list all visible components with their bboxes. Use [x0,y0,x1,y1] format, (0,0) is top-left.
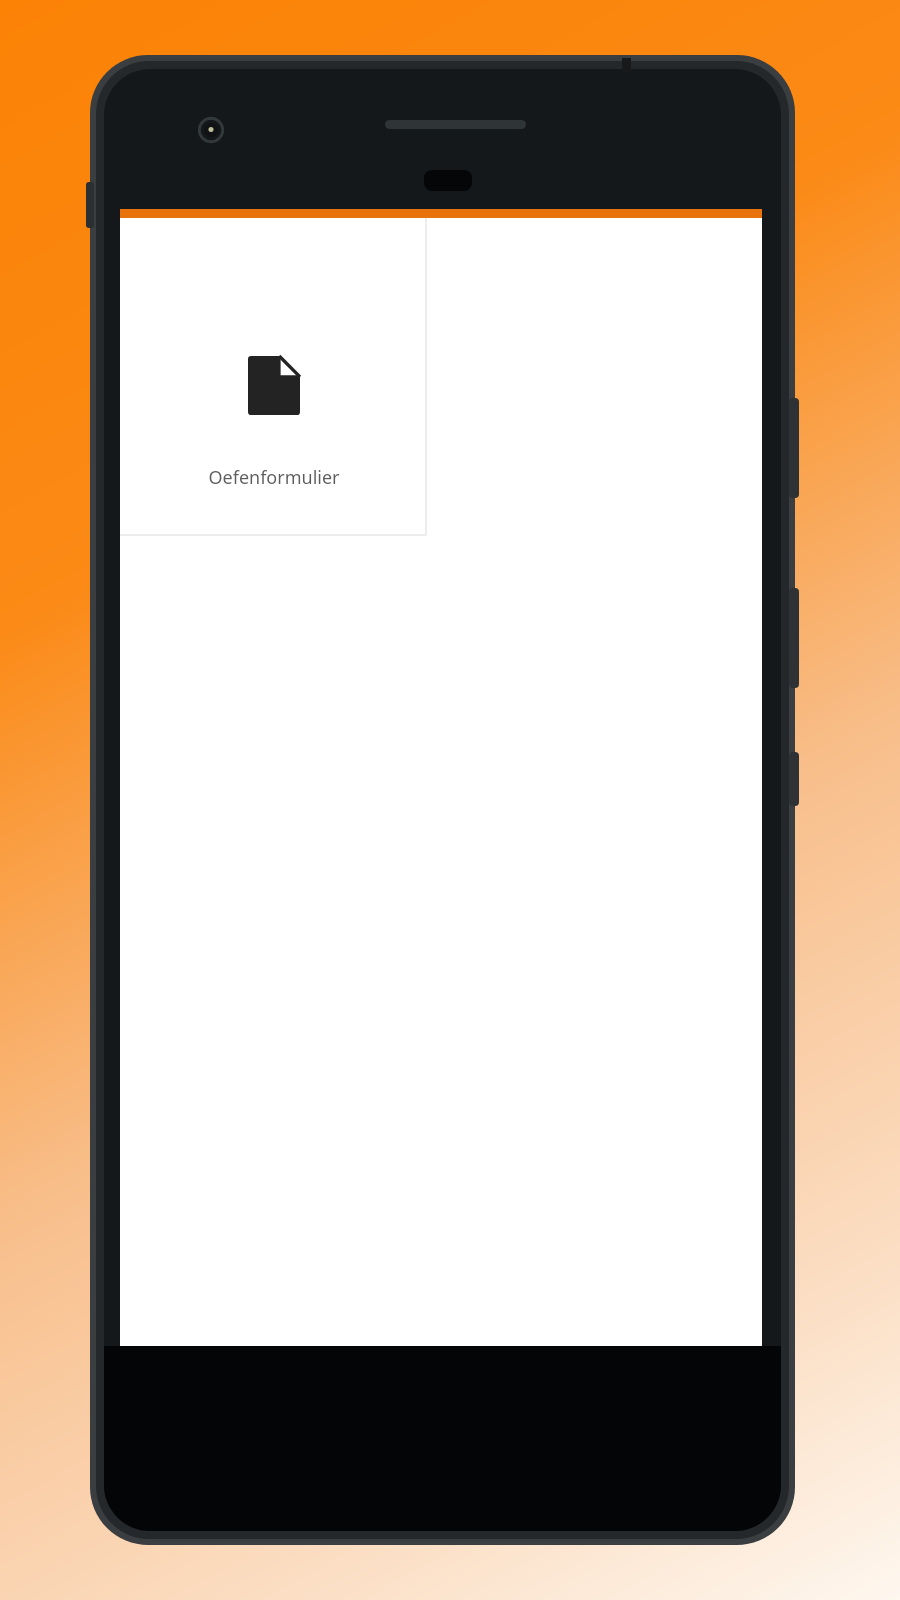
button[interactable]: Oefenformulier document [120,218,427,536]
other: Oefenformulier document [248,356,300,415]
staticText: Oefenformulier [208,465,340,490]
